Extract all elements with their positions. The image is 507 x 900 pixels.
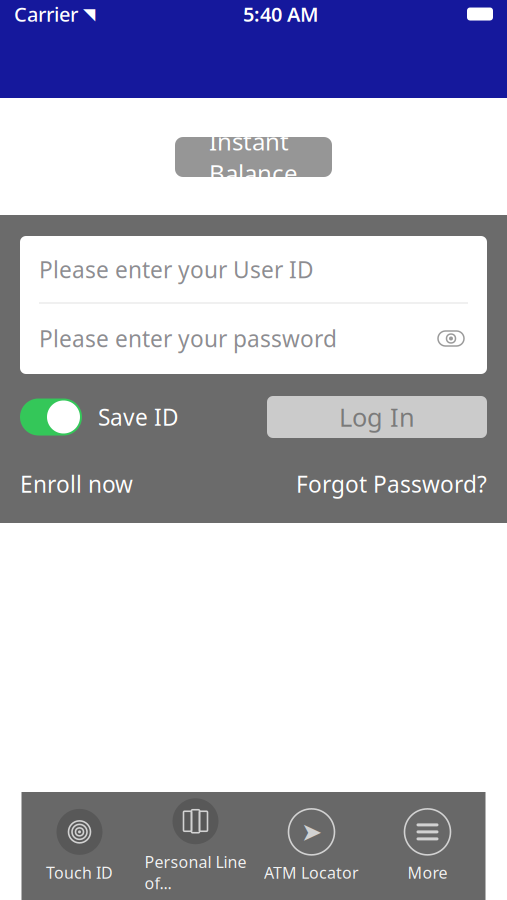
staticText: Please enter your password (39, 323, 337, 353)
staticText: Enroll now (20, 469, 133, 499)
button[interactable]: Personal Line of... (137, 794, 253, 898)
staticText: Carrier (14, 1, 78, 27)
staticText: Forgot Password? (296, 469, 487, 499)
button[interactable]: Forgot Password? (296, 463, 487, 505)
staticText: More (407, 862, 447, 883)
button[interactable]: More (369, 805, 485, 887)
staticText: Touch ID (46, 862, 113, 883)
button[interactable]: Instant Balance (175, 137, 332, 177)
button[interactable]: ➤ (253, 805, 369, 887)
button[interactable]: Log In (267, 396, 487, 438)
staticText: Save ID (98, 402, 179, 432)
staticText: Personal Line of... (144, 851, 246, 894)
staticText: Please enter your User ID (39, 254, 314, 284)
staticText: ◥ (83, 5, 95, 23)
staticText: ATM Locator (264, 862, 359, 883)
button[interactable]: Show password (434, 325, 468, 351)
staticText: ➤ (301, 817, 322, 846)
button[interactable]: Save ID toggle (20, 398, 82, 435)
button[interactable]: Touch ID (21, 805, 137, 887)
staticText: Log In (339, 400, 415, 434)
button[interactable]: Enroll now (20, 463, 133, 505)
staticText: 5:40 AM (243, 1, 319, 27)
staticText: Instant Balance (209, 125, 298, 189)
